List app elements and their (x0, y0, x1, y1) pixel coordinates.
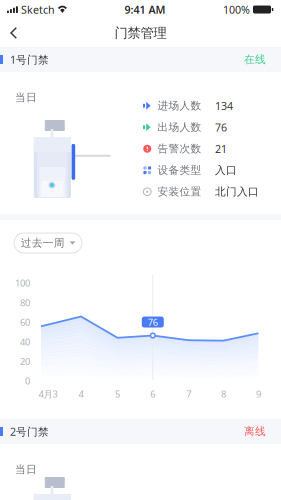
staticText: 100 (15, 277, 30, 289)
staticText: 入口 (215, 164, 237, 177)
staticText: 当日 (15, 91, 37, 104)
staticText: 21 (215, 142, 227, 156)
button[interactable]: Back (0, 20, 29, 46)
staticText: 进场人数 (157, 99, 201, 112)
staticText: Sketch (21, 2, 55, 17)
staticText: 76 (148, 316, 158, 328)
staticText: 100% (223, 2, 250, 17)
staticText: 门禁管理 (114, 25, 166, 41)
staticText: 设备类型 (157, 164, 201, 177)
staticText: 北门入口 (215, 185, 259, 198)
staticText: 4月3 (38, 388, 57, 400)
staticText: 4 (78, 388, 83, 400)
staticText: 20 (20, 355, 30, 368)
staticText: 1号门禁 (10, 52, 49, 67)
staticText: 60 (20, 316, 30, 328)
staticText: 76 (215, 120, 227, 134)
staticText: 5 (115, 388, 120, 400)
staticText: 安装位置 (157, 185, 201, 198)
staticText: 出场人数 (157, 121, 201, 134)
staticText: 9:41 AM (124, 2, 165, 17)
staticText: 134 (215, 99, 233, 113)
staticText: 离线 (244, 425, 266, 438)
button[interactable]: 过去一周 (14, 233, 82, 253)
staticText: 40 (20, 336, 30, 348)
staticText: 9 (256, 388, 261, 400)
staticText: 80 (20, 296, 30, 309)
staticText: 2号门禁 (10, 424, 49, 439)
staticText: 7 (186, 388, 191, 400)
staticText: 当日 (15, 463, 37, 476)
staticText: 0 (25, 375, 30, 387)
staticText: 告警次数 (157, 142, 201, 155)
staticText: 6 (150, 388, 155, 400)
staticText: 8 (221, 388, 226, 400)
staticText: 过去一周 (21, 236, 65, 249)
staticText: 在线 (244, 53, 266, 66)
